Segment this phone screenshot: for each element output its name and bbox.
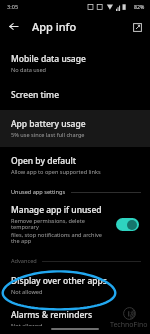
staticText: Display over other apps [11,275,107,287]
staticText: App battery usage [11,118,86,130]
button[interactable]: Open in new [124,14,150,40]
staticText: Allow app to open supported links [11,168,101,176]
staticText: Manage app if unused [11,204,102,216]
button[interactable]: Alarms & reminders [0,304,150,334]
staticText: Unused app settings [11,188,66,196]
staticText: Open by default [11,155,77,167]
staticText: Alarms & reminders [11,309,93,321]
staticText: Screen time [11,89,60,101]
staticText: 5% use since last full charge [11,131,85,139]
staticText: Advanced [11,257,37,265]
staticText: App info [32,19,77,34]
button[interactable]: Screen time [0,81,150,110]
staticText: No data used [11,66,47,74]
button[interactable]: Back [0,13,27,40]
staticText: Not allowed [11,322,43,326]
staticText: Not allowed [11,288,43,296]
button[interactable]: Display over other apps [0,270,150,304]
button[interactable]: Open by default [0,147,150,183]
button[interactable]: Manage app if unused [0,200,150,251]
staticText: TechnoFino [110,320,148,330]
button[interactable]: App battery usage [0,110,150,147]
staticText: files, stop notifications and archive th… [11,231,110,245]
button[interactable]: Mobile data usage [0,46,150,81]
button[interactable]: Manage app if unused toggle [116,218,139,231]
staticText: Mobile data usage [11,53,86,65]
staticText: Remove permissions, delete temporary [11,217,110,231]
staticText: 82% [134,3,145,10]
staticText: 3:05 [7,3,19,11]
